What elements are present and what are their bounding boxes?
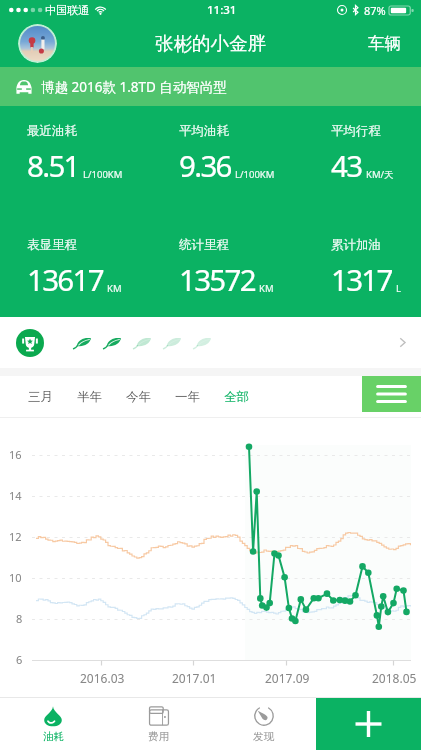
staticText: 2017.01 — [172, 670, 217, 686]
staticText: 2018.05 — [372, 670, 417, 686]
staticText: 10 — [9, 570, 22, 585]
button[interactable]: 三月 — [16, 380, 65, 414]
button[interactable]: Profile — [18, 24, 57, 63]
staticText: 8 — [16, 611, 23, 626]
button[interactable]: 一年 — [163, 380, 212, 414]
staticText: L/100KM — [235, 168, 275, 181]
staticText: 6 — [16, 652, 23, 667]
staticText: L — [396, 282, 401, 295]
staticText: 统计里程 — [179, 237, 229, 253]
staticText: 14 — [9, 488, 22, 503]
staticText: 11:31 — [207, 2, 237, 18]
staticText: 16 — [9, 447, 22, 462]
staticText: 12 — [9, 529, 22, 544]
button[interactable]: 发现 — [211, 697, 316, 750]
staticText: 13572 — [179, 259, 255, 299]
staticText: 13617 — [27, 259, 103, 299]
staticText: 三月 — [28, 389, 53, 405]
button[interactable]: 油耗 — [0, 697, 106, 750]
staticText: 2017.09 — [265, 670, 310, 686]
button[interactable]: Add record — [316, 698, 421, 750]
button[interactable]: 博越 2016款 1.8TD 自动智尚型 — [0, 67, 421, 106]
button[interactable] — [0, 317, 421, 368]
button[interactable]: 车辆 — [364, 29, 405, 58]
staticText: 1317 — [331, 259, 392, 299]
button[interactable]: 全部 — [212, 380, 261, 414]
staticText: 博越 2016款 1.8TD 自动智尚型 — [41, 78, 227, 96]
staticText: 费用 — [148, 730, 169, 743]
staticText: KM — [107, 282, 122, 295]
staticText: 平均油耗 — [179, 123, 229, 139]
staticText: 张彬的小金胖 — [155, 32, 266, 55]
staticText: 油耗 — [43, 730, 64, 743]
staticText: 2016.03 — [80, 670, 125, 686]
staticText: 平均行程 — [331, 123, 381, 139]
staticText: KM/天 — [366, 168, 394, 181]
staticText: 发现 — [253, 730, 274, 743]
button[interactable]: 费用 — [106, 697, 211, 750]
staticText: 43 — [331, 145, 362, 185]
staticText: 8.51 — [27, 145, 79, 185]
button[interactable]: 今年 — [114, 380, 163, 414]
staticText: 9.36 — [179, 145, 231, 185]
staticText: L/100KM — [83, 168, 123, 181]
button[interactable]: 半年 — [65, 380, 114, 414]
staticText: 车辆 — [368, 33, 401, 54]
staticText: 表显里程 — [27, 237, 77, 253]
staticText: 87% — [364, 3, 386, 18]
staticText: 一年 — [175, 389, 200, 405]
button[interactable]: Menu — [362, 376, 421, 412]
staticText: 半年 — [77, 389, 102, 405]
staticText: 今年 — [126, 389, 151, 405]
staticText: 最近油耗 — [27, 123, 77, 139]
staticText: 中国联通 — [45, 3, 89, 17]
staticText: KM — [259, 282, 274, 295]
staticText: 累计加油 — [331, 237, 381, 253]
staticText: 全部 — [224, 389, 249, 405]
